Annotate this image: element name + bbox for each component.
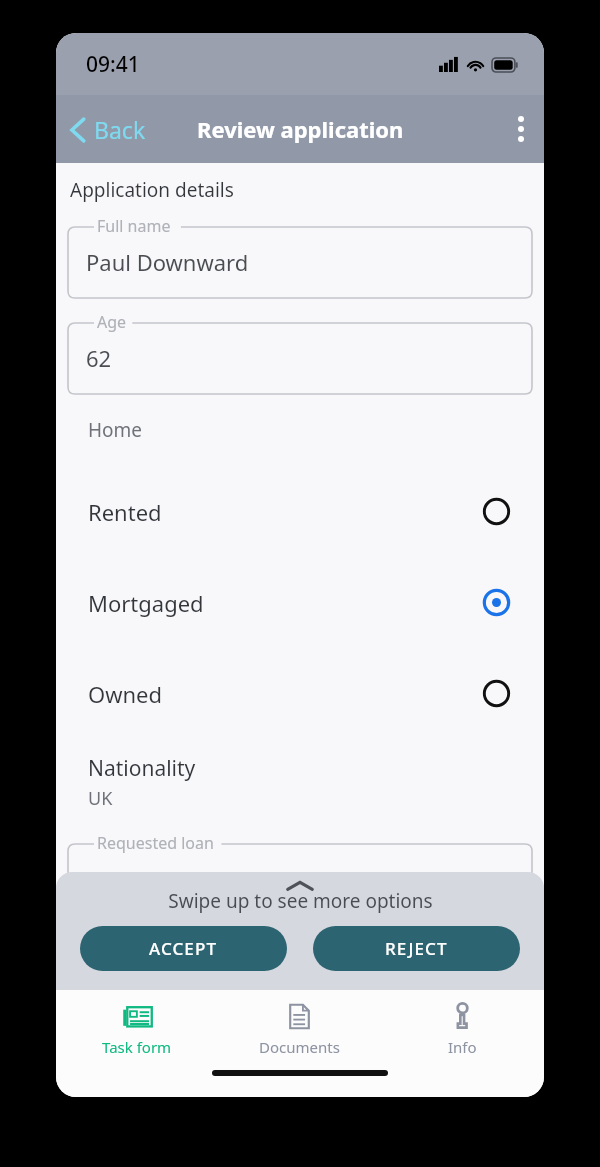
- staticText: Nationality: [88, 754, 196, 783]
- staticText: Back: [94, 114, 146, 145]
- button[interactable]: REJECT: [313, 926, 520, 971]
- button[interactable]: Back: [56, 108, 156, 151]
- staticText: Home: [88, 417, 143, 443]
- staticText: Rented: [88, 497, 162, 527]
- staticText: Documents: [259, 1037, 340, 1057]
- button[interactable]: More options: [498, 103, 544, 155]
- staticText: Application details: [70, 177, 234, 203]
- button[interactable]: Info: [381, 990, 544, 1066]
- button[interactable]: Full name: [68, 216, 532, 298]
- staticText: Task form: [102, 1037, 172, 1057]
- staticText: Swipe up to see more options: [168, 888, 433, 914]
- staticText: Owned: [88, 679, 163, 709]
- staticText: Paul Downward: [86, 247, 249, 277]
- staticText: 09:41: [86, 50, 140, 79]
- other: Expand sheet: [286, 880, 314, 892]
- staticText: ACCEPT: [149, 937, 218, 960]
- button[interactable]: Age: [68, 312, 532, 394]
- staticText: Requested loan: [97, 832, 214, 854]
- staticText: REJECT: [385, 937, 448, 960]
- staticText: Review application: [197, 114, 404, 144]
- staticText: Info: [448, 1037, 477, 1057]
- button[interactable]: Documents: [218, 990, 381, 1066]
- staticText: UK: [88, 786, 113, 811]
- staticText: 62: [86, 343, 112, 373]
- button[interactable]: Requested loan: [68, 833, 532, 915]
- button[interactable]: Mortgaged: [68, 557, 532, 648]
- staticText: Full name: [97, 215, 171, 237]
- button[interactable]: Task form: [56, 990, 218, 1066]
- staticText: Mortgaged: [88, 588, 204, 618]
- staticText: Age: [97, 311, 127, 333]
- button[interactable]: ACCEPT: [80, 926, 287, 971]
- button[interactable]: Rented: [68, 466, 532, 557]
- button[interactable]: Owned: [68, 648, 532, 739]
